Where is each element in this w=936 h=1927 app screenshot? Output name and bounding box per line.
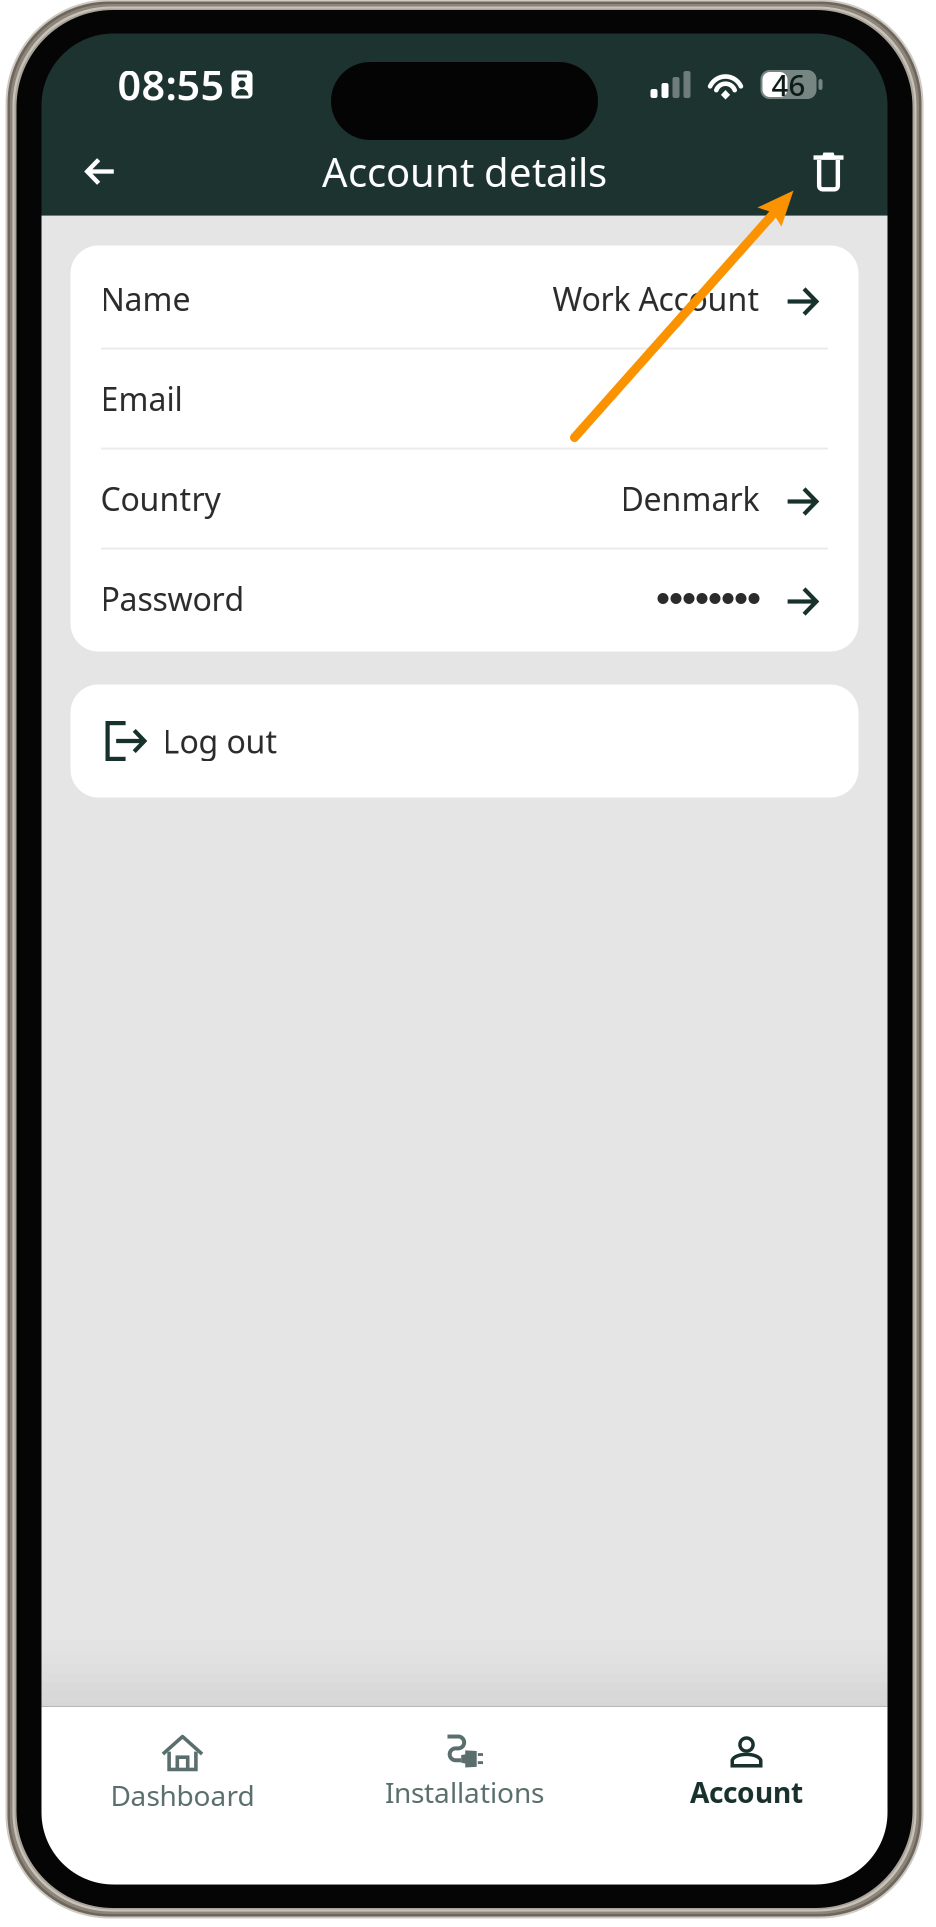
staticText: Dashboard: [110, 1776, 254, 1814]
staticText: Log out: [162, 720, 277, 762]
button[interactable]: Log out: [70, 684, 858, 797]
button[interactable]: Country: [70, 449, 858, 547]
staticText: Name: [100, 277, 190, 320]
staticText: Account details: [322, 145, 607, 198]
staticText: Country: [100, 477, 220, 520]
button[interactable]: Password: [70, 549, 858, 647]
staticText: Denmark: [620, 477, 759, 520]
staticText: Work Account: [552, 277, 759, 320]
staticText: Email: [100, 377, 182, 420]
staticText: Installations: [385, 1773, 544, 1811]
button[interactable]: Dashboard: [41, 1706, 323, 1884]
staticText: 46: [771, 65, 805, 104]
button[interactable]: Back: [60, 131, 140, 211]
button[interactable]: Email: [70, 349, 858, 447]
button[interactable]: Name: [70, 249, 858, 347]
button[interactable]: Delete account: [788, 131, 868, 211]
staticText: Password: [100, 577, 244, 620]
button[interactable]: Installations: [323, 1706, 605, 1884]
button[interactable]: Account: [605, 1706, 887, 1884]
staticText: 08:55: [117, 57, 224, 112]
staticText: Account: [690, 1773, 803, 1811]
